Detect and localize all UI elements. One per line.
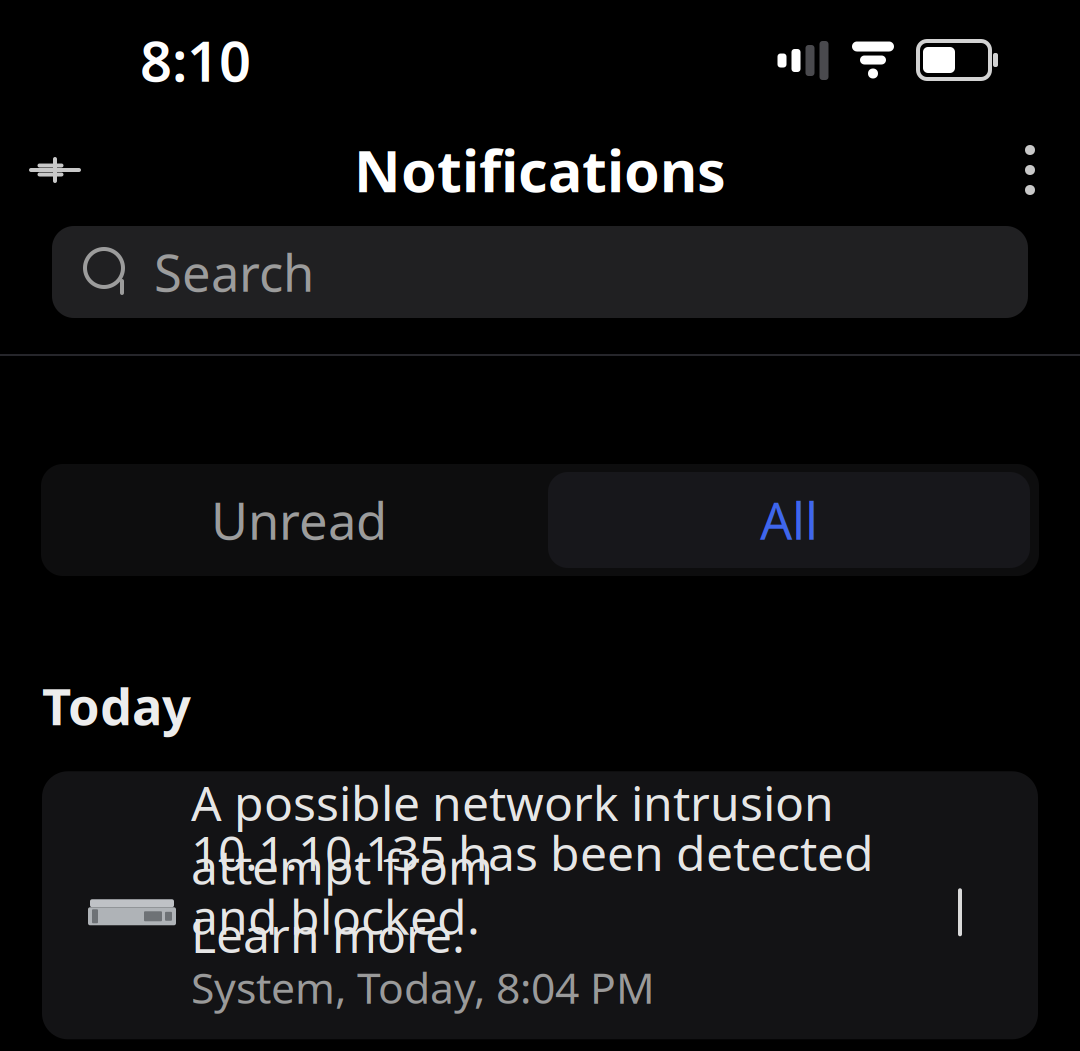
staticText: System, Today, 8:04 PM: [191, 959, 655, 1016]
staticText: 8:10: [140, 23, 251, 97]
staticText: Today: [42, 672, 191, 739]
button[interactable]: Unread: [50, 464, 548, 576]
button[interactable]: All: [548, 472, 1030, 568]
staticText: Search: [154, 238, 314, 306]
staticText: A possible network intrusion attempt fro…: [191, 770, 834, 898]
button[interactable]: Search: [52, 226, 1028, 318]
button[interactable]: More options: [980, 120, 1080, 220]
button[interactable]: A possible network intrusion attempt fro…: [42, 771, 1038, 1039]
button[interactable]: Back: [0, 120, 110, 220]
staticText: Learn more.: [191, 902, 465, 966]
staticText: 10.1.10.135 has been detected and blocke…: [191, 820, 874, 948]
staticText: Notifications: [354, 132, 726, 208]
staticText: Unread: [211, 486, 387, 554]
staticText: All: [760, 486, 818, 554]
